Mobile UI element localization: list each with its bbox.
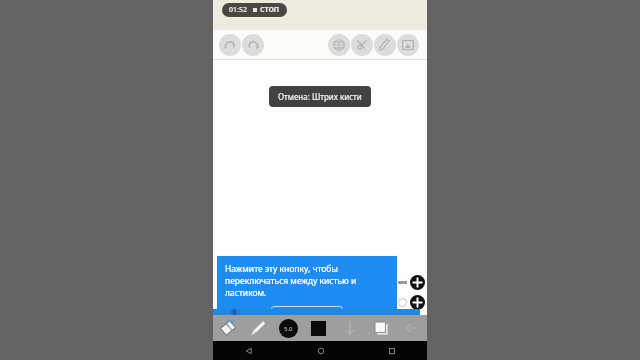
button[interactable]: Download <box>334 315 365 341</box>
staticText: 01:52 <box>229 5 247 15</box>
button[interactable]: Grid <box>328 34 350 56</box>
button[interactable]: Zoom in <box>410 275 425 290</box>
button[interactable]: Back <box>213 341 285 360</box>
button[interactable]: Layers <box>365 315 396 341</box>
button[interactable]: Brush <box>243 315 273 341</box>
button[interactable]: Transform <box>351 34 373 56</box>
button[interactable]: Edit <box>374 34 396 56</box>
button[interactable]: Color <box>303 315 334 341</box>
button[interactable]: Undo <box>219 34 241 56</box>
staticText: 5.0 <box>284 325 293 333</box>
button[interactable]: Eraser <box>213 315 243 341</box>
staticText: OK <box>301 309 314 321</box>
button[interactable]: Recents <box>356 341 427 360</box>
button[interactable]: Home <box>285 341 356 360</box>
staticText: Нажмите эту кнопку, чтобы переключаться … <box>225 263 389 299</box>
button[interactable]: 5.0 <box>273 315 303 341</box>
button[interactable]: Gallery <box>397 34 419 56</box>
button[interactable]: OK <box>271 306 343 323</box>
button[interactable]: Zoom out <box>410 295 425 310</box>
button[interactable]: Redo <box>242 34 264 56</box>
staticText: СТОП <box>260 5 280 15</box>
staticText: Отмена: Штрих кисти <box>278 91 362 102</box>
